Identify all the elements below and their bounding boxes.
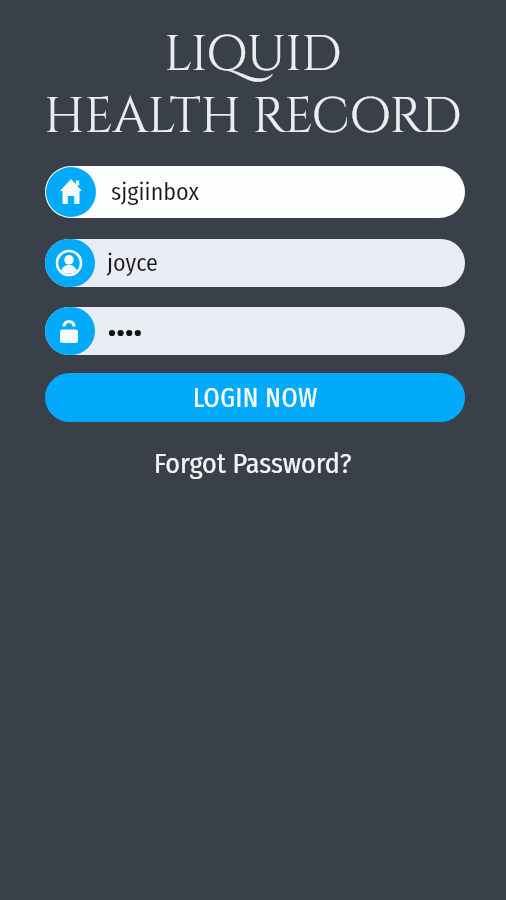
button[interactable]: sjgiinbox bbox=[45, 166, 465, 218]
button[interactable] bbox=[45, 307, 465, 355]
button[interactable]: Forgot Password? bbox=[154, 447, 352, 481]
button[interactable]: joyce bbox=[45, 239, 465, 287]
staticText: LIQUID bbox=[164, 21, 342, 88]
button[interactable]: LOGIN NOW bbox=[45, 373, 465, 422]
staticText: joyce bbox=[107, 249, 158, 278]
staticText: sjgiinbox bbox=[111, 178, 200, 207]
staticText: HEALTH RECORD bbox=[44, 83, 462, 150]
staticText: LOGIN NOW bbox=[193, 381, 318, 415]
